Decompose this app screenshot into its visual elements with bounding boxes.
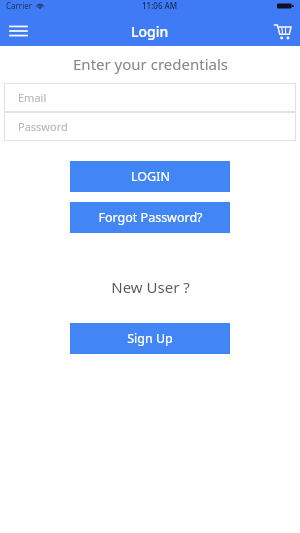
staticText: Carrier xyxy=(6,0,33,11)
staticText: Sign Up xyxy=(127,330,173,347)
button[interactable]: Password xyxy=(4,112,296,141)
staticText: New User ? xyxy=(111,277,190,297)
button[interactable]: Email xyxy=(4,83,296,112)
button[interactable]: LOGIN xyxy=(70,161,230,192)
staticText: Email xyxy=(18,90,47,105)
staticText: Forgot Password? xyxy=(98,209,203,226)
staticText: 11:06 AM xyxy=(142,0,178,11)
button[interactable]: Forgot Password? xyxy=(70,202,230,233)
staticText: Password xyxy=(18,119,68,134)
staticText: Enter your credentials xyxy=(73,54,228,74)
button[interactable]: Sign Up xyxy=(70,323,230,354)
staticText: Login xyxy=(131,22,169,41)
button[interactable]: Cart xyxy=(264,16,300,46)
button[interactable]: Menu xyxy=(0,16,36,46)
staticText: LOGIN xyxy=(131,168,170,185)
